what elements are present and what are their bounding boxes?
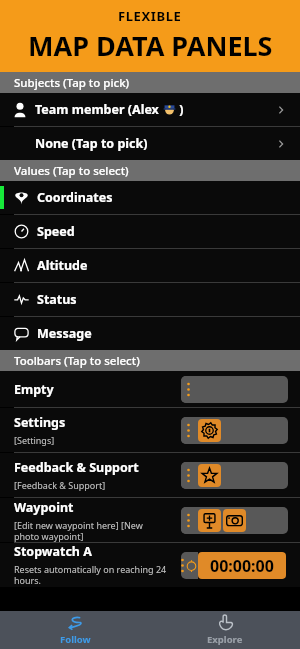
- button[interactable]: Follow: [0, 611, 150, 649]
- button[interactable]: Stopwatch A: [0, 543, 300, 587]
- button[interactable]: Feedback & Support: [0, 453, 300, 497]
- staticText: Feedback & Support: [14, 459, 139, 476]
- button[interactable]: None (Tap to pick): [0, 127, 300, 160]
- staticText: MAP DATA PANELS: [28, 27, 273, 64]
- staticText: [Feedback & Support]: [14, 479, 106, 491]
- button[interactable]: Empty: [0, 371, 300, 407]
- staticText: Follow: [60, 633, 91, 646]
- button[interactable]: Team member (Alex: [0, 93, 300, 126]
- staticText: Coordinates: [37, 189, 113, 206]
- button[interactable]: Coordinates: [0, 181, 300, 214]
- staticText: Team member (Alex: [35, 101, 163, 118]
- button[interactable]: Waypoint: [0, 498, 300, 542]
- button[interactable]: Status: [0, 283, 300, 316]
- button[interactable]: Message: [0, 317, 300, 350]
- button[interactable]: Settings: [0, 408, 300, 452]
- button[interactable]: Speed: [0, 215, 300, 248]
- staticText: [Settings]: [14, 434, 55, 446]
- staticText: Explore: [207, 633, 243, 646]
- staticText: Altitude: [37, 257, 88, 274]
- staticText: Resets automatically on reaching 24 hour…: [14, 563, 181, 587]
- staticText: 00:00:00: [210, 555, 274, 577]
- staticText: FLEXIBLE: [118, 7, 182, 25]
- staticText: ): [176, 101, 184, 118]
- button[interactable]: Altitude: [0, 249, 300, 282]
- staticText: Message: [37, 325, 92, 342]
- staticText: Speed: [37, 223, 75, 240]
- staticText: Toolbars (Tap to select): [14, 353, 140, 369]
- staticText: Settings: [14, 414, 66, 431]
- staticText: Status: [37, 291, 77, 308]
- staticText: Waypoint: [14, 499, 74, 516]
- staticText: Stopwatch A: [14, 543, 92, 560]
- staticText: Subjects (Tap to pick): [14, 75, 130, 91]
- staticText: Empty: [14, 381, 54, 398]
- button[interactable]: Explore: [150, 611, 300, 649]
- staticText: None (Tap to pick): [35, 135, 148, 152]
- staticText: Values (Tap to select): [14, 163, 129, 179]
- staticText: [Edit new waypoint here] [New photo wayp…: [14, 519, 143, 542]
